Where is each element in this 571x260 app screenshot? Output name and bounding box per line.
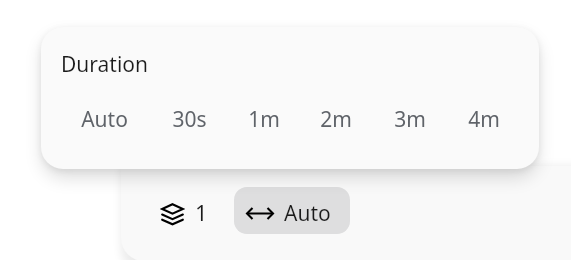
button[interactable]: Auto — [72, 101, 136, 138]
staticText: 3m — [394, 105, 426, 134]
button[interactable]: Layers — [155, 193, 214, 235]
staticText: 1m — [248, 105, 280, 134]
other: Auto duration — [247, 208, 273, 219]
button[interactable]: Auto duration — [234, 187, 350, 234]
button[interactable]: 1m — [232, 101, 296, 138]
staticText: 30s — [172, 105, 207, 134]
button[interactable]: 4m — [452, 101, 516, 138]
staticText: 1 — [195, 197, 208, 227]
staticText: Duration — [61, 50, 149, 79]
staticText: Auto — [284, 199, 331, 228]
other: Layers — [161, 203, 184, 226]
button[interactable]: 30s — [157, 101, 221, 138]
button[interactable]: 3m — [378, 101, 442, 138]
staticText: 4m — [468, 105, 500, 134]
button[interactable]: 2m — [304, 101, 368, 138]
staticText: Auto — [81, 105, 128, 134]
staticText: 2m — [320, 105, 352, 134]
